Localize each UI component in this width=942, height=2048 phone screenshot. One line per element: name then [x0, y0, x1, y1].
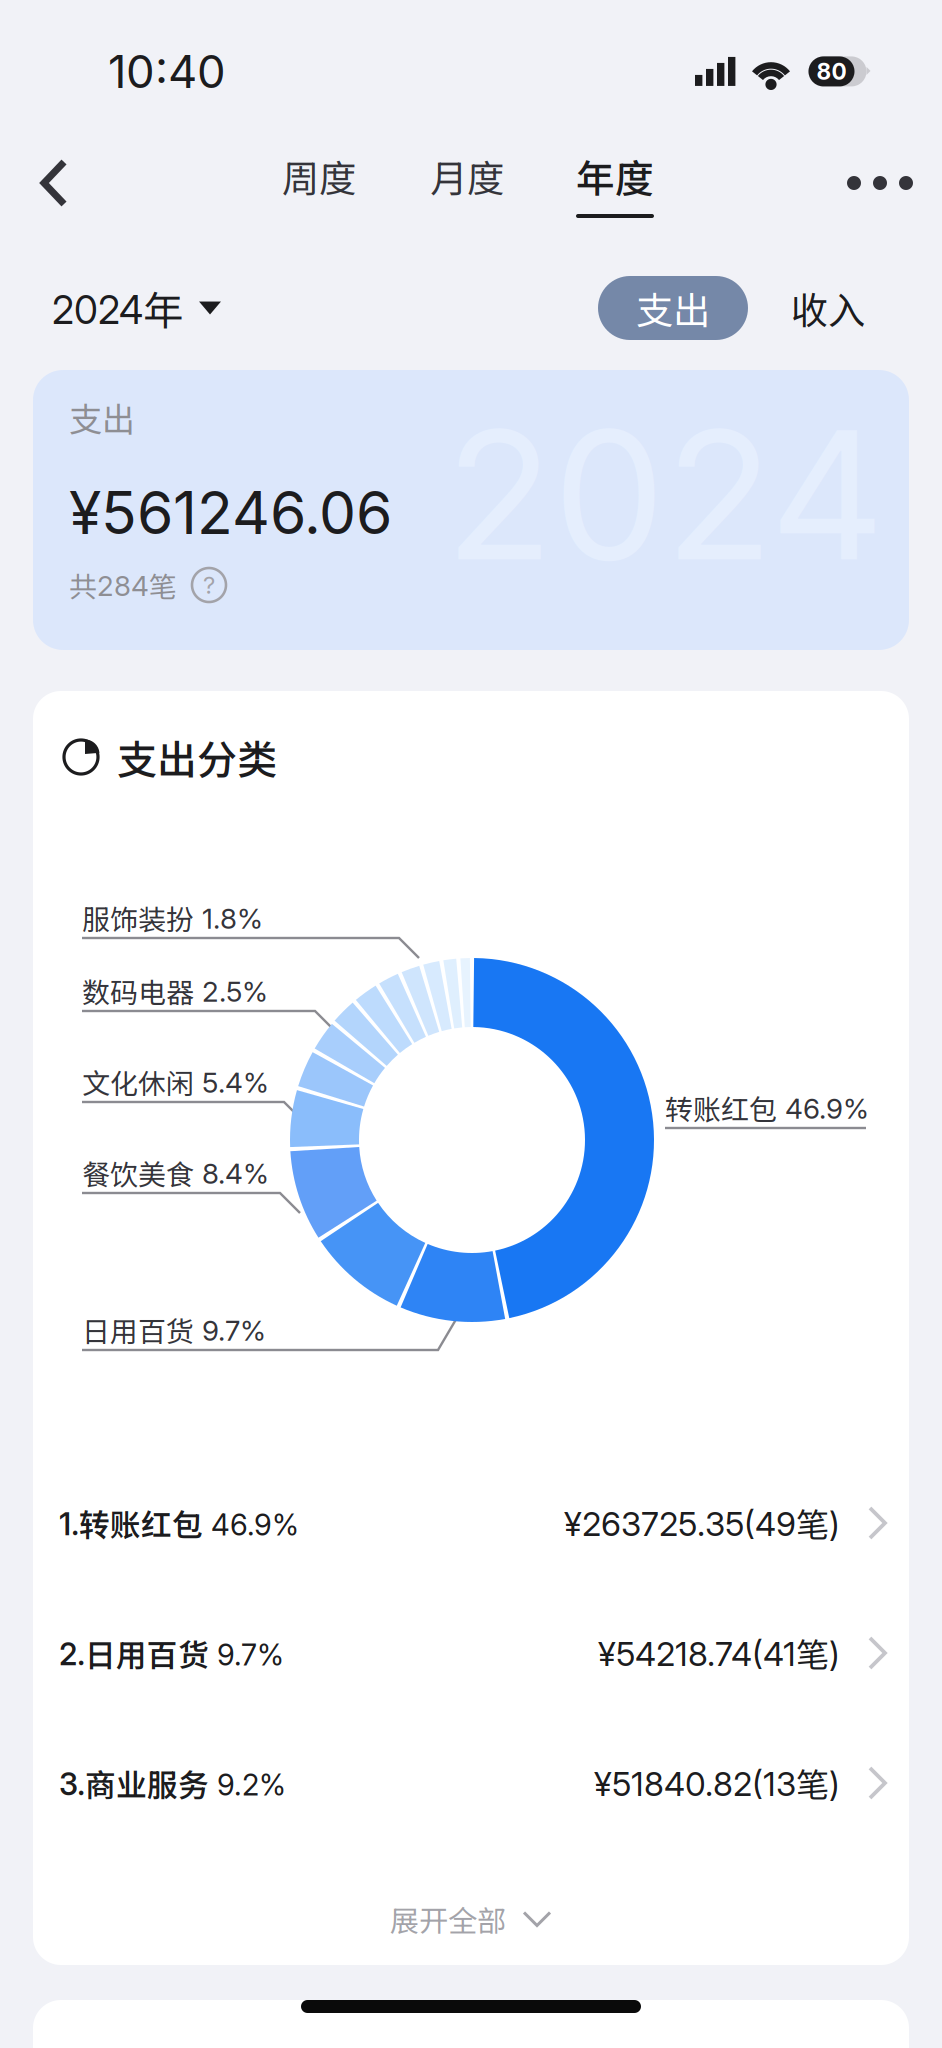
staticText: 展开全部	[390, 1898, 506, 1940]
staticText: 共284笔	[69, 565, 177, 605]
staticText: ¥51840.82(13笔)	[594, 1759, 840, 1807]
staticText: 80	[816, 58, 846, 85]
button[interactable]: 1.转账红包 46.9%	[33, 1458, 909, 1588]
button[interactable]: 展开全部	[33, 1848, 909, 1990]
staticText: 转账红包 46.9%	[665, 1088, 869, 1127]
button[interactable]: 收入	[786, 276, 870, 340]
staticText: 周度	[282, 149, 356, 203]
button[interactable]: 3.商业服务 9.2%	[33, 1718, 909, 1848]
staticText: 餐饮美食 8.4%	[82, 1153, 269, 1192]
staticText: 3.商业服务 9.2%	[59, 1761, 286, 1805]
staticText: ¥263725.35(49笔)	[564, 1499, 840, 1547]
staticText: ¥561246.06	[69, 477, 392, 548]
staticText: 支出	[69, 393, 135, 441]
button[interactable]: 2024年	[0, 270, 243, 346]
staticText: 月度	[430, 149, 504, 203]
staticText: 10:40	[108, 44, 226, 99]
staticText: 收入	[791, 281, 865, 335]
button[interactable]: 周度	[256, 120, 382, 246]
button[interactable]: More options	[832, 120, 928, 246]
staticText: 2.日用百货 9.7%	[59, 1631, 284, 1675]
staticText: 日用百货 9.7%	[82, 1310, 266, 1349]
button[interactable]: 支出	[598, 276, 748, 340]
staticText: ?	[203, 570, 215, 599]
staticText: 1.转账红包 46.9%	[59, 1501, 299, 1545]
staticText: 数码电器 2.5%	[82, 971, 268, 1010]
staticText: 服饰装扮 1.8%	[82, 898, 263, 937]
staticText: 年度	[576, 148, 654, 204]
button[interactable]: 月度	[404, 120, 530, 246]
staticText: 2024年	[52, 280, 183, 336]
staticText: ¥54218.74(41笔)	[598, 1629, 840, 1677]
staticText: 文化休闲 5.4%	[82, 1062, 269, 1101]
button[interactable]: Back	[6, 120, 102, 246]
staticText: 支出分类	[117, 728, 277, 786]
staticText: 2024	[445, 387, 885, 602]
button[interactable]: 年度	[552, 120, 678, 246]
staticText: 支出	[636, 281, 710, 335]
button[interactable]: 2.日用百货 9.7%	[33, 1588, 909, 1718]
